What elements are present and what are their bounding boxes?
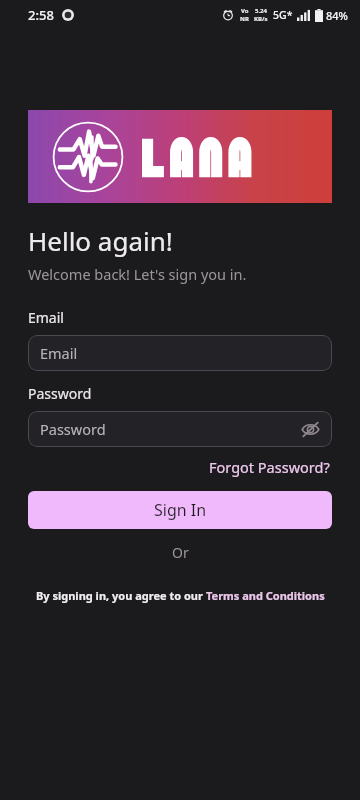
staticText: Vo	[241, 7, 249, 15]
staticText: Hello again!	[28, 223, 173, 258]
staticText: Terms and Conditions	[206, 588, 325, 603]
button[interactable]: Terms and Conditions	[206, 588, 325, 603]
button[interactable]: Password	[28, 411, 332, 447]
staticText: Sign In	[154, 499, 207, 521]
staticText: Email	[28, 308, 64, 327]
staticText: 84%	[326, 8, 348, 23]
staticText: Password	[40, 419, 106, 439]
staticText: 5.24	[255, 7, 267, 15]
staticText: Email	[40, 343, 78, 363]
staticText: Password	[28, 384, 92, 403]
staticText: 2:58	[28, 6, 54, 24]
staticText: By signing in, you agree to our	[36, 588, 206, 603]
staticText: Welcome back! Let's sign you in.	[28, 264, 247, 284]
button[interactable]: Show password	[299, 418, 321, 440]
staticText: Forgot Password?	[209, 457, 330, 477]
button[interactable]: Email	[28, 335, 332, 371]
staticText: Or	[172, 543, 189, 562]
staticText: KB/s	[254, 15, 268, 23]
button[interactable]: Forgot Password?	[207, 455, 332, 479]
staticText: NR	[240, 15, 249, 23]
staticText: 5G*	[273, 8, 293, 22]
button[interactable]: Sign In	[28, 491, 332, 529]
